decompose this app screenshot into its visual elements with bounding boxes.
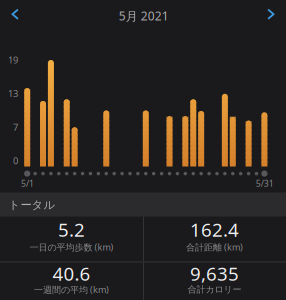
staticText: 5月 2021: [119, 8, 169, 24]
staticText: 一日の平均歩数 (km): [29, 241, 113, 253]
staticText: 一週間の平均 (km): [34, 283, 109, 296]
staticText: 合計距離 (km): [186, 241, 243, 253]
button[interactable]: Next month: [254, 0, 286, 28]
staticText: 5.2: [58, 217, 85, 242]
staticText: 5/1: [21, 177, 34, 189]
staticText: トータル: [8, 198, 55, 212]
button[interactable]: Previous month: [0, 0, 32, 28]
staticText: 7: [13, 121, 18, 133]
staticText: 合計カロリー: [187, 284, 241, 295]
staticText: 5/31: [256, 177, 274, 189]
staticText: 9,635: [190, 261, 239, 286]
staticText: 19: [8, 53, 18, 66]
staticText: 40.6: [52, 261, 90, 286]
staticText: 162.4: [190, 217, 239, 242]
staticText: 0: [13, 154, 18, 167]
staticText: 13: [8, 87, 18, 100]
